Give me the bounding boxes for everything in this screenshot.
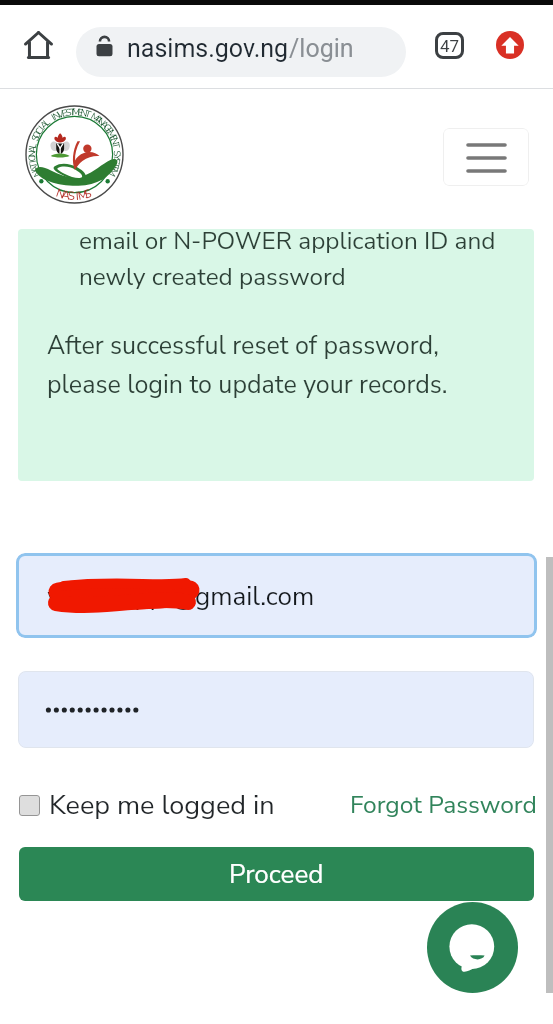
- staticText: nasims.gov.ng: [127, 34, 289, 63]
- button[interactable]: Menu: [443, 128, 529, 186]
- button[interactable]: nasims.gov.ng: [76, 27, 406, 77]
- button[interactable]: Forgot Password: [350, 785, 537, 825]
- staticText: Forgot Password: [350, 788, 537, 822]
- button[interactable]: [18, 671, 534, 748]
- staticText: Keep me logged in: [49, 787, 275, 824]
- staticText: After successful reset of password, plea…: [47, 329, 448, 402]
- button[interactable]: Proceed: [19, 847, 534, 901]
- staticText: w.jqqqqqn@gmail.com: [47, 579, 315, 614]
- button[interactable]: Keep me logged in: [19, 785, 275, 825]
- button[interactable]: Chat: [427, 902, 518, 993]
- button[interactable]: w.jqqqqqn@gmail.com: [16, 553, 537, 638]
- staticText: /login: [289, 34, 354, 63]
- staticText: Proceed: [229, 857, 324, 892]
- button[interactable]: Home: [9, 15, 65, 71]
- button[interactable]: Tabs, 47 open: [425, 21, 473, 69]
- button[interactable]: Update available: [486, 21, 534, 69]
- staticText: email or N-POWER application ID and newl…: [79, 229, 496, 293]
- staticText: 47: [440, 36, 460, 56]
